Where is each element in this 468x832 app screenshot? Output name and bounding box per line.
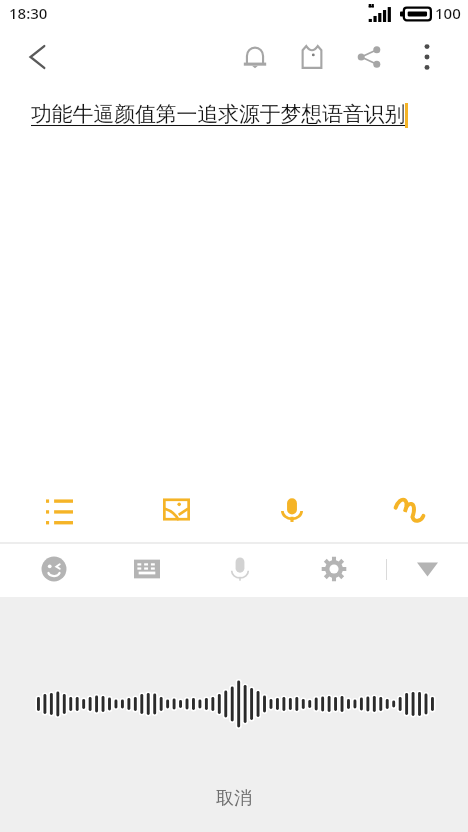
button[interactable]: Voice [215,544,265,594]
button[interactable]: Voice input [263,481,321,539]
button[interactable]: Insert image [147,480,205,538]
staticText: 100 [435,3,461,23]
button[interactable]: Hide keyboard [402,544,452,594]
button[interactable]: Back [12,32,62,82]
button[interactable]: Keyboard [122,544,172,594]
button[interactable]: Settings [309,544,359,594]
staticText: 取消 [216,787,252,810]
button[interactable]: More options [402,32,452,82]
button[interactable]: 取消 [216,787,252,810]
button[interactable]: Handwriting [380,480,438,538]
button[interactable]: Emoji [29,544,79,594]
button[interactable]: Share [344,32,394,82]
staticText: 功能牛逼颜值第一追求源于梦想语音识别 [31,101,406,127]
button[interactable]: Reminder [230,32,280,82]
button[interactable]: Bullet list [30,481,88,539]
staticText: 18:30 [9,3,48,23]
button[interactable]: Tag [287,32,337,82]
